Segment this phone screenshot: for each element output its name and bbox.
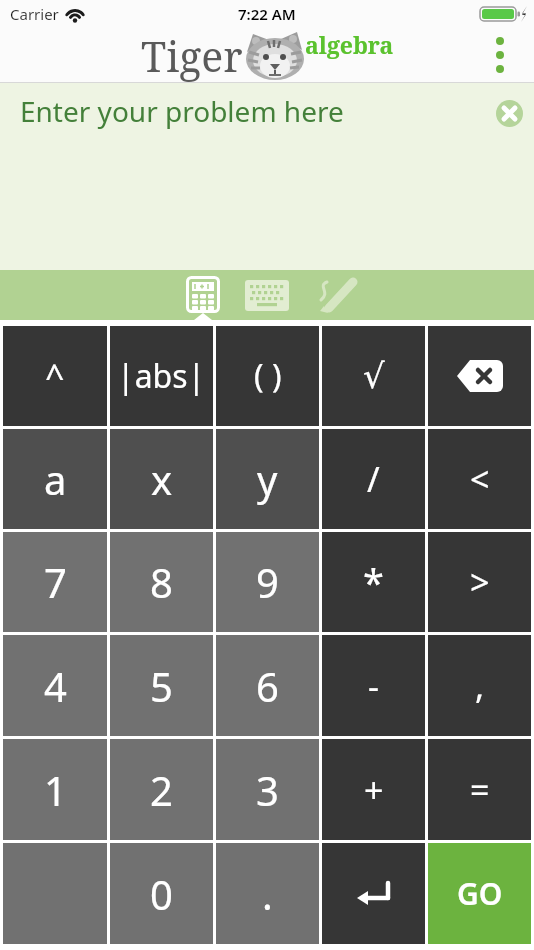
- button[interactable]: 8: [110, 532, 213, 632]
- staticText: ^: [45, 353, 65, 399]
- staticText: *: [363, 556, 384, 608]
- staticText: 6: [256, 659, 279, 713]
- staticText: 9: [256, 555, 279, 609]
- staticText: GO: [457, 873, 503, 914]
- staticText: ( ): [254, 354, 282, 398]
- button[interactable]: [315, 276, 359, 314]
- staticText: 1: [44, 763, 67, 817]
- staticText: y: [257, 452, 278, 506]
- button[interactable]: 6: [216, 635, 319, 736]
- staticText: -: [368, 663, 379, 709]
- staticText: 0: [150, 867, 173, 921]
- staticText: 3: [256, 763, 279, 817]
- staticText: 4: [44, 659, 67, 713]
- button[interactable]: [496, 37, 504, 73]
- button[interactable]: GO: [428, 843, 531, 944]
- button[interactable]: -: [322, 635, 425, 736]
- staticText: <: [470, 456, 490, 502]
- staticText: =: [470, 767, 490, 813]
- button[interactable]: .: [216, 843, 319, 944]
- button[interactable]: /: [322, 429, 425, 529]
- button[interactable]: [322, 843, 425, 944]
- button[interactable]: ^: [3, 326, 107, 426]
- staticText: +: [364, 767, 384, 813]
- staticText: 8: [150, 555, 173, 609]
- staticText: Enter your problem here: [20, 92, 344, 130]
- button[interactable]: x: [110, 429, 213, 529]
- staticText: x: [151, 452, 173, 506]
- button[interactable]: 3: [216, 739, 319, 840]
- button[interactable]: [245, 280, 289, 311]
- button[interactable]: <: [428, 429, 531, 529]
- staticText: .: [262, 867, 273, 921]
- button[interactable]: √: [322, 326, 425, 426]
- staticText: |abs|: [117, 354, 206, 398]
- staticText: Tiger: [141, 28, 243, 82]
- staticText: √: [363, 356, 385, 396]
- staticText: ,: [475, 663, 485, 709]
- button[interactable]: 2: [110, 739, 213, 840]
- button[interactable]: =: [428, 739, 531, 840]
- button[interactable]: *: [322, 532, 425, 632]
- button[interactable]: +: [322, 739, 425, 840]
- button[interactable]: [428, 326, 531, 426]
- button[interactable]: 7: [3, 532, 107, 632]
- staticText: 5: [150, 659, 173, 713]
- button[interactable]: ( ): [216, 326, 319, 426]
- button[interactable]: [186, 276, 220, 314]
- button[interactable]: y: [216, 429, 319, 529]
- staticText: a: [44, 452, 67, 506]
- button[interactable]: ,: [428, 635, 531, 736]
- staticText: 2: [150, 763, 173, 817]
- staticText: >: [470, 559, 490, 605]
- staticText: Carrier: [10, 4, 59, 24]
- button[interactable]: >: [428, 532, 531, 632]
- button[interactable]: 0: [110, 843, 213, 944]
- button[interactable]: 5: [110, 635, 213, 736]
- button[interactable]: 4: [3, 635, 107, 736]
- staticText: 7:22 AM: [238, 4, 296, 24]
- button[interactable]: 9: [216, 532, 319, 632]
- button[interactable]: [496, 100, 523, 127]
- staticText: /: [367, 456, 380, 502]
- staticText: 7: [44, 555, 67, 609]
- button[interactable]: 1: [3, 739, 107, 840]
- button[interactable]: a: [3, 429, 107, 529]
- button[interactable]: |abs|: [110, 326, 213, 426]
- staticText: algebra: [305, 29, 394, 60]
